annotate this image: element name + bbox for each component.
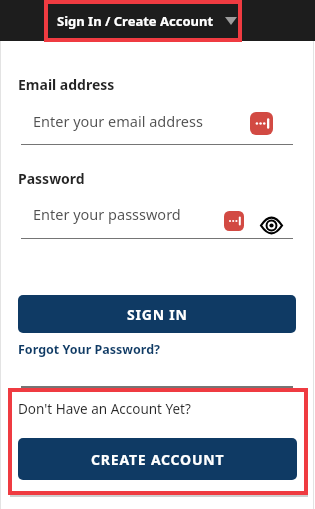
- staticText: Enter your passsword: [33, 204, 181, 224]
- button[interactable]: [224, 211, 244, 231]
- staticText: Password: [18, 169, 85, 188]
- button[interactable]: Forgot Your Password?: [18, 341, 161, 358]
- staticText: Sign In / Create Account: [57, 12, 214, 30]
- button[interactable]: [261, 218, 282, 233]
- staticText: Email address: [18, 75, 115, 94]
- button[interactable]: [250, 112, 273, 135]
- button[interactable]: CREATE ACCOUNT: [18, 438, 297, 480]
- button[interactable]: SIGN IN: [18, 295, 296, 333]
- staticText: CREATE ACCOUNT: [91, 450, 225, 469]
- button[interactable]: Sign In / Create Account: [44, 0, 242, 42]
- staticText: SIGN IN: [127, 305, 188, 324]
- staticText: Don't Have an Account Yet?: [18, 400, 191, 418]
- staticText: Enter your email address: [33, 111, 203, 131]
